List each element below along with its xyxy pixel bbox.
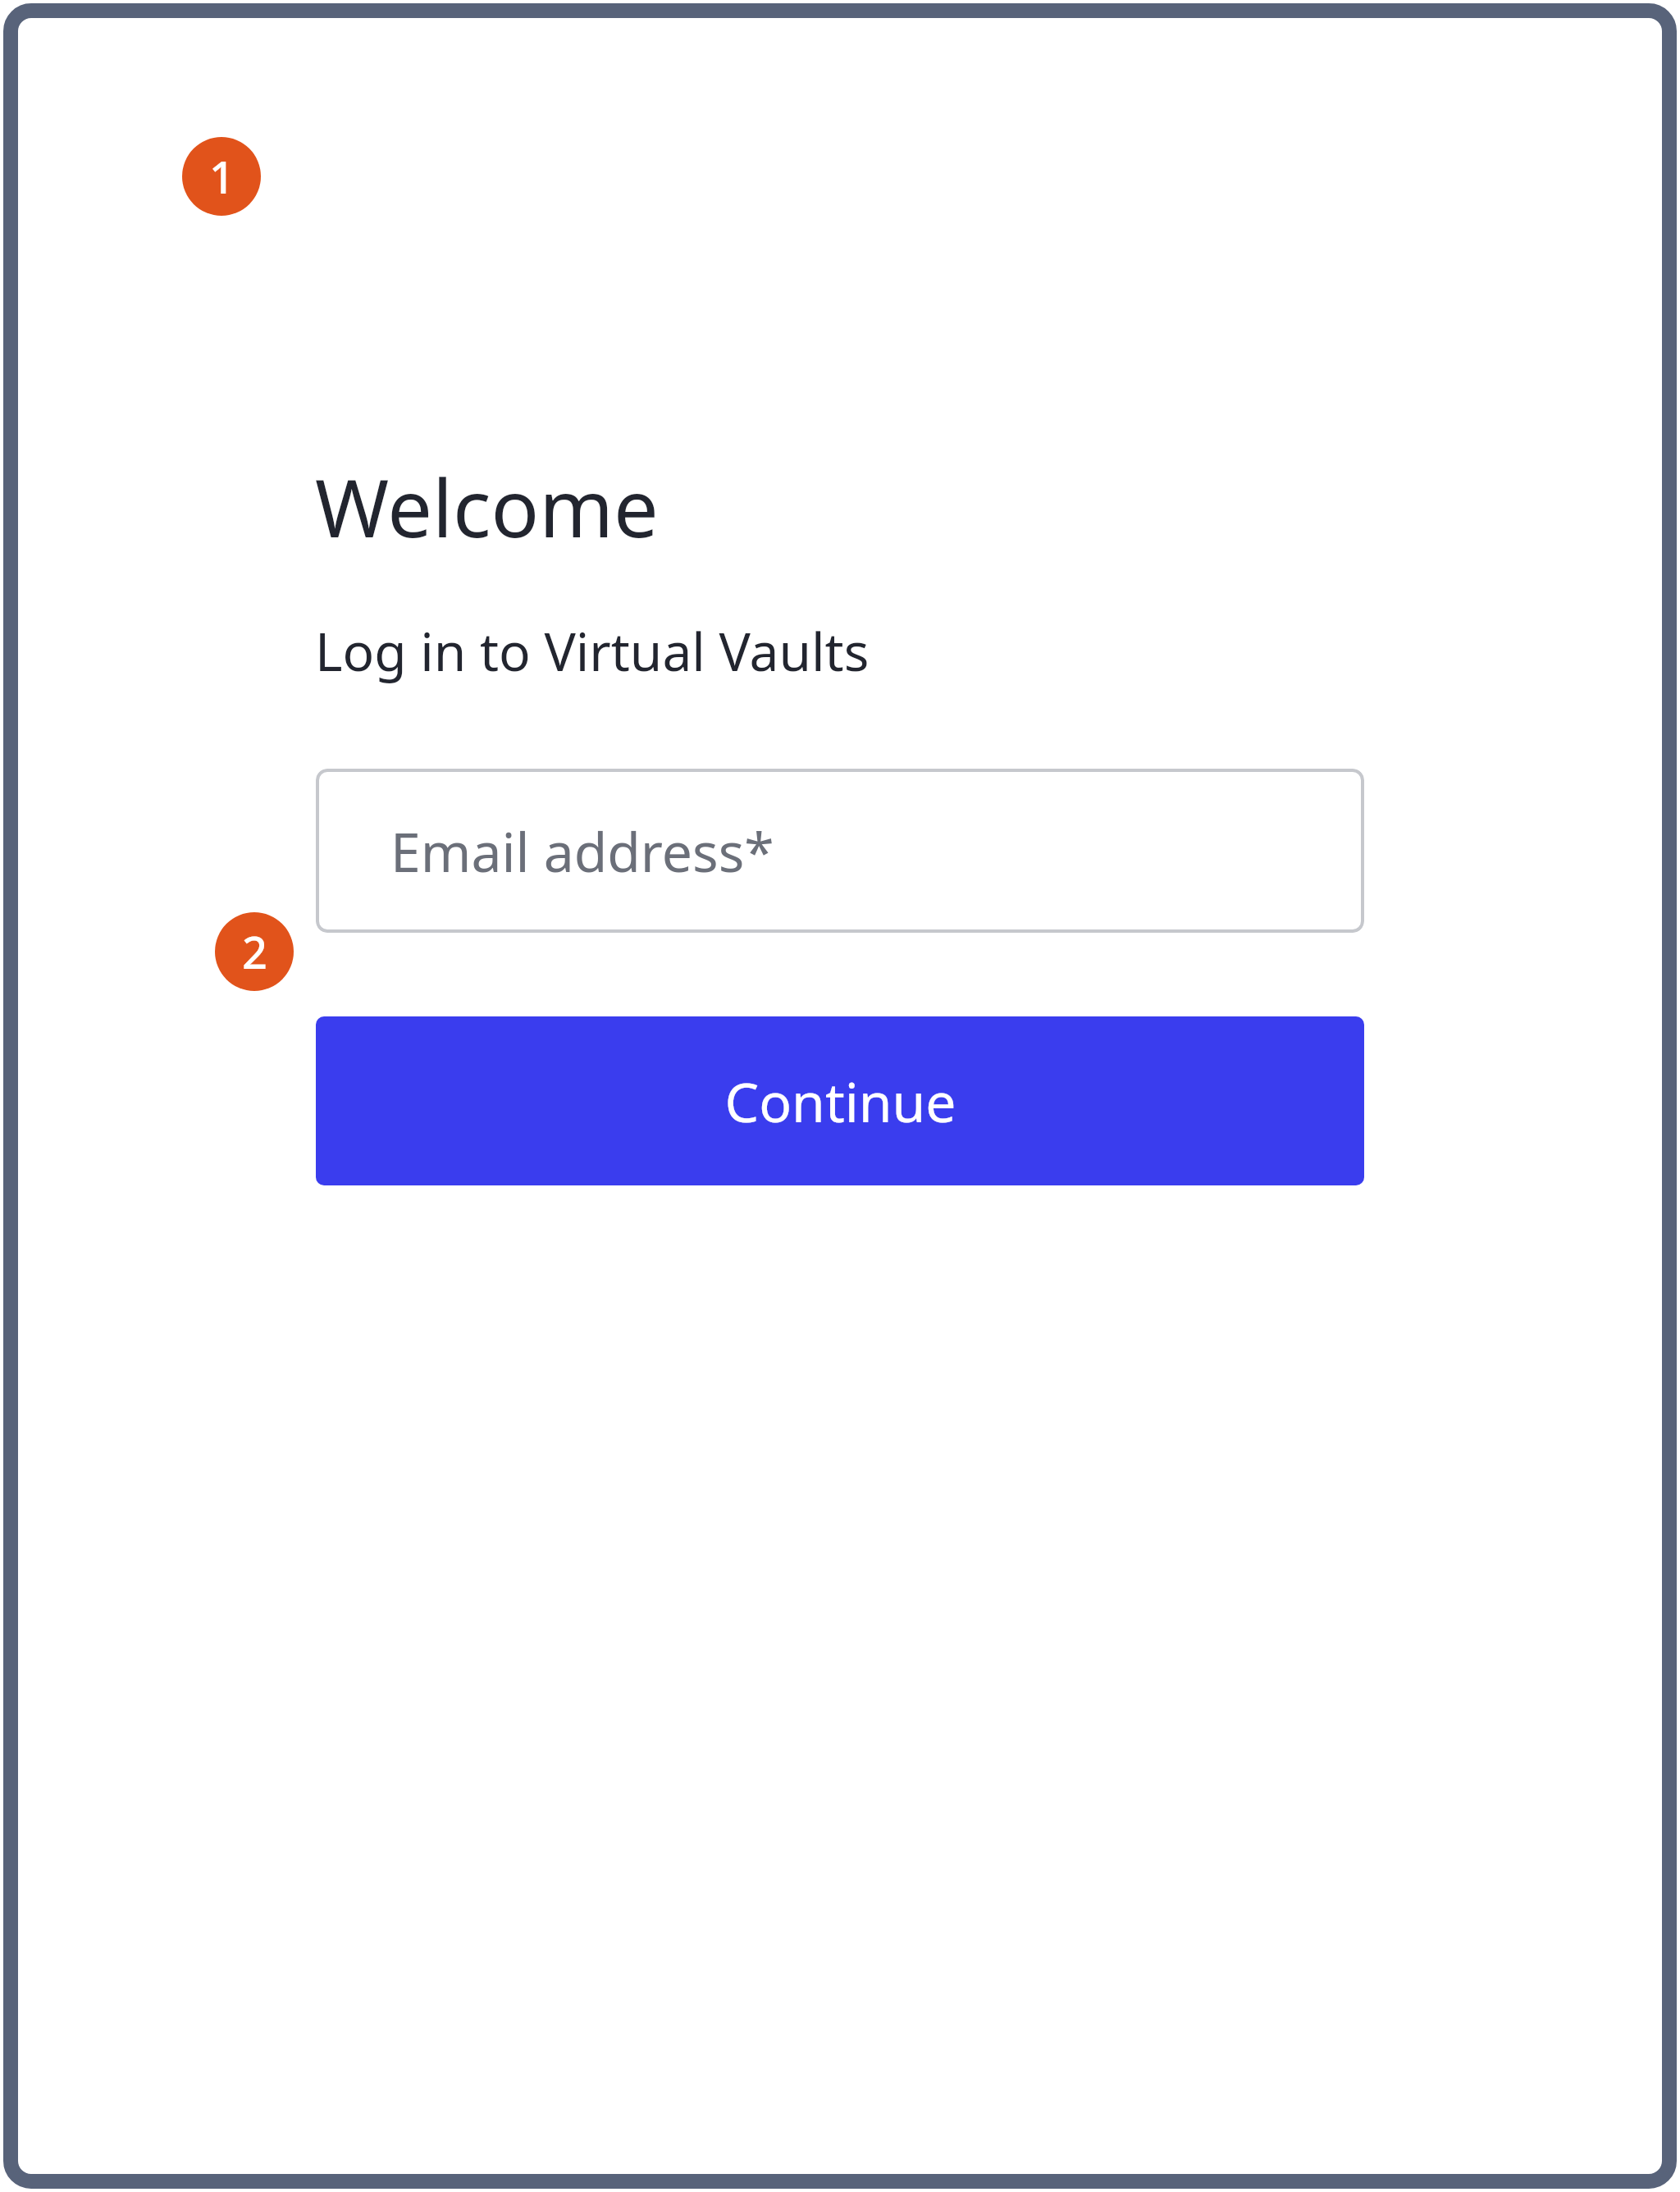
staticText: Log in to Virtual Vaults <box>315 615 870 687</box>
button[interactable]: Email address* <box>316 769 1364 933</box>
staticText: Email address* <box>390 814 774 888</box>
staticText: 1 <box>209 146 235 207</box>
other: Step 2 marker <box>215 912 294 991</box>
staticText: Continue <box>724 1064 956 1138</box>
staticText: 2 <box>242 921 267 982</box>
other: Step 1 marker <box>182 137 261 216</box>
staticText: Welcome <box>315 452 659 560</box>
button[interactable]: Continue <box>316 1016 1364 1185</box>
